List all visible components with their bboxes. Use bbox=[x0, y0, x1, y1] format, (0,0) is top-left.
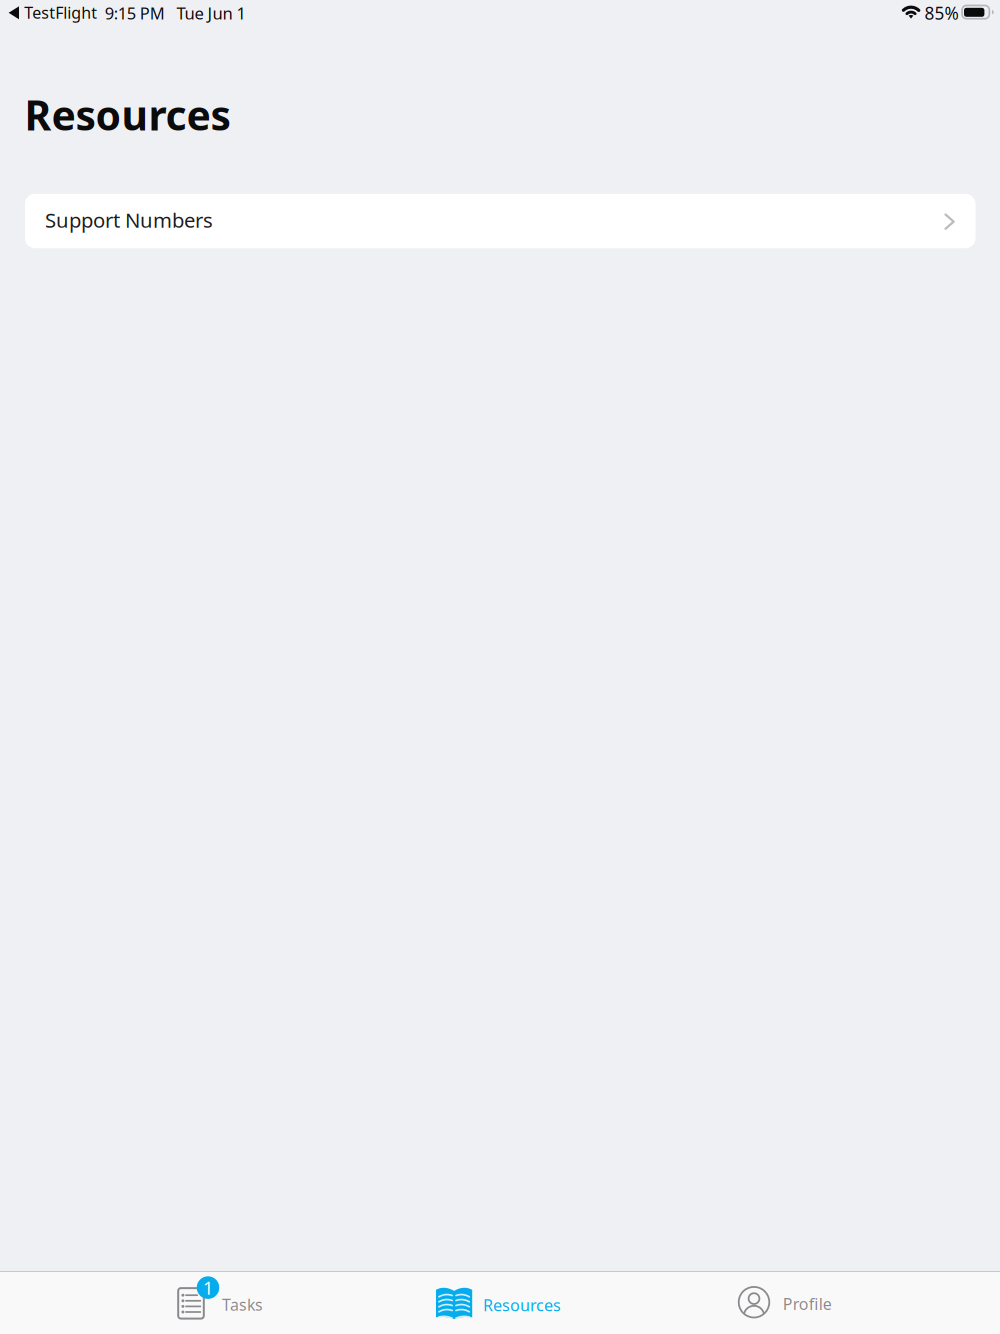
staticText: 1 bbox=[203, 1275, 213, 1300]
staticText: Profile bbox=[783, 1293, 832, 1315]
staticText: Tue Jun 1 bbox=[177, 2, 247, 24]
button[interactable]: Tasks bbox=[177, 1272, 262, 1333]
button[interactable]: Resources bbox=[436, 1272, 561, 1333]
button[interactable]: Support Numbers bbox=[25, 194, 975, 248]
staticText: 9:15 PM bbox=[105, 2, 165, 24]
staticText: TestFlight bbox=[24, 2, 97, 23]
staticText: Tasks bbox=[222, 1294, 263, 1315]
button[interactable]: Profile bbox=[738, 1272, 831, 1333]
staticText: Resources bbox=[24, 87, 230, 142]
staticText: Resources bbox=[483, 1294, 561, 1316]
staticText: Support Numbers bbox=[45, 206, 213, 234]
staticText: 85% bbox=[925, 1, 959, 25]
